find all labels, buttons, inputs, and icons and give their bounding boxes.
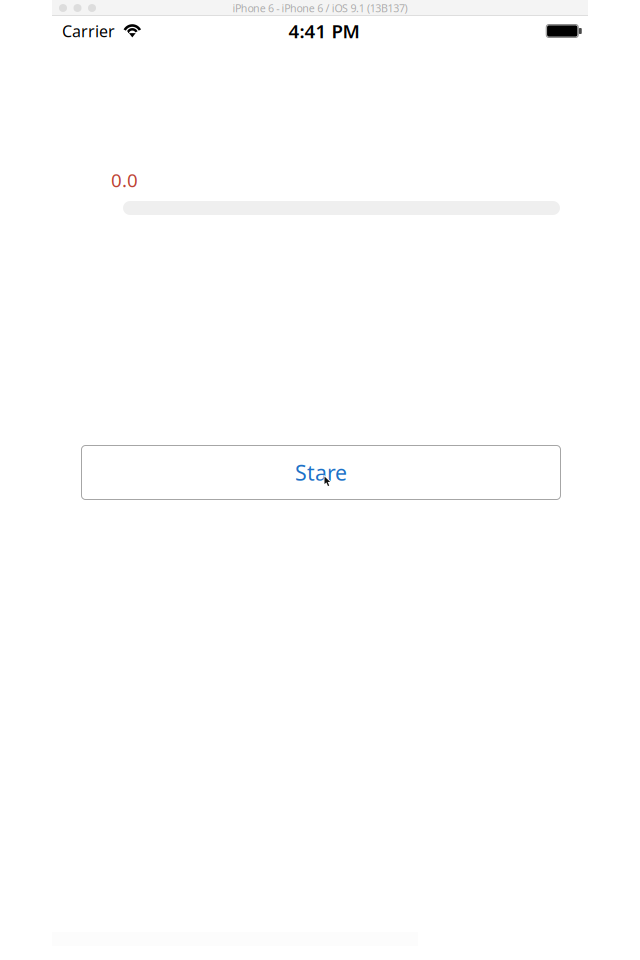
button[interactable]: Stare [81, 445, 560, 499]
staticText: 0.0 [111, 168, 138, 192]
staticText: 4:41 PM [288, 19, 359, 43]
staticText: iPhone 6 - iPhone 6 / iOS 9.1 (13B137) [232, 1, 408, 15]
staticText: Carrier [62, 20, 115, 42]
staticText: Stare [295, 458, 347, 487]
